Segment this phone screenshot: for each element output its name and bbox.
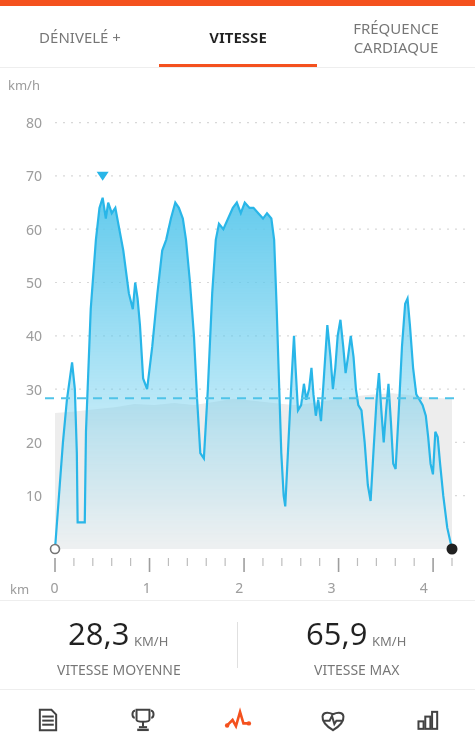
staticText: VITESSE MOYENNE <box>57 660 181 679</box>
button[interactable]: 65,9 <box>238 600 475 690</box>
button[interactable]: VITESSE <box>159 6 317 68</box>
button[interactable]: Records <box>95 690 190 750</box>
button[interactable]: Statistics <box>380 690 475 750</box>
staticText: KM/H <box>372 632 407 650</box>
button[interactable]: Documents <box>0 690 95 750</box>
staticText: DÉNIVELÉ + <box>39 27 121 47</box>
button[interactable]: Heart rate <box>285 690 380 750</box>
staticText: 65,9 <box>306 612 368 654</box>
staticText: VITESSE <box>209 27 267 47</box>
button[interactable]: FRÉQUENCE CARDIAQUE <box>317 6 475 68</box>
staticText: KM/H <box>134 632 169 650</box>
button[interactable]: DÉNIVELÉ + <box>0 6 159 68</box>
button[interactable]: Activity <box>190 690 285 750</box>
staticText: VITESSE MAX <box>314 660 400 679</box>
staticText: 28,3 <box>68 612 130 654</box>
button[interactable]: 28,3 <box>0 600 237 690</box>
staticText: FRÉQUENCE CARDIAQUE <box>353 18 439 57</box>
